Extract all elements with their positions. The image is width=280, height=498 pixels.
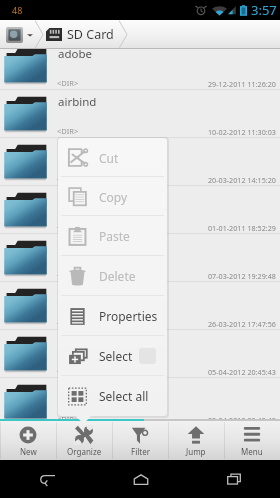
button[interactable]: bluetooth: [0, 330, 280, 378]
staticText: 05-04-2012 20:45:43: [208, 367, 276, 377]
staticText: Cut: [99, 150, 119, 166]
staticText: <DIR>: [57, 126, 79, 136]
staticText: adobe: [58, 49, 93, 62]
button[interactable]: Select all: [58, 376, 167, 416]
staticText: 29-12-2011 11:26:20: [208, 79, 276, 89]
button[interactable]: adobe: [0, 49, 280, 90]
button[interactable]: Copy: [58, 177, 167, 216]
staticText: Paste: [99, 228, 130, 244]
button[interactable]: Back: [0, 460, 94, 498]
staticText: 05-04-2012 20:45:43: [208, 415, 276, 419]
button[interactable]: books: [0, 378, 280, 419]
staticText: <DIR>: [57, 78, 79, 88]
button[interactable]: Cut: [58, 138, 167, 177]
staticText: <DIR>: [57, 270, 79, 280]
staticText: <DIR>: [57, 174, 79, 184]
button[interactable]: Paste: [58, 216, 167, 256]
button[interactable]: Recent apps: [187, 460, 280, 498]
staticText: New: [20, 446, 37, 457]
staticText: albumthumbs: [58, 142, 135, 158]
staticText: amazonmp3: [58, 190, 126, 206]
staticText: bluetooth: [58, 334, 111, 350]
staticText: backups: [58, 286, 103, 302]
staticText: Select: [99, 348, 133, 364]
button[interactable]: Filter: [112, 421, 168, 460]
button[interactable]: Delete: [58, 256, 167, 296]
staticText: Jump: [186, 446, 206, 457]
button[interactable]: backups: [0, 282, 280, 330]
staticText: 48: [12, 4, 23, 16]
staticText: SD Card: [67, 26, 114, 43]
button[interactable]: Properties: [58, 296, 167, 336]
staticText: Android: [58, 238, 102, 254]
staticText: 07-03-2012 19:29:48: [208, 271, 276, 281]
button[interactable]: Open navigation: [0, 20, 34, 49]
staticText: Copy: [99, 189, 128, 205]
staticText: Menu: [241, 446, 263, 457]
staticText: Delete: [99, 268, 136, 284]
button[interactable]: Jump: [168, 421, 224, 460]
button[interactable]: Organize: [56, 421, 112, 460]
button[interactable]: Menu: [224, 421, 280, 460]
staticText: books: [58, 382, 91, 398]
staticText: 3:57: [251, 1, 277, 19]
staticText: <DIR>: [57, 414, 79, 419]
staticText: <DIR>: [57, 366, 79, 376]
staticText: 20-03-2012 14:15:20: [208, 175, 276, 185]
staticText: <DIR>: [57, 222, 79, 232]
button[interactable]: airbind: [0, 90, 280, 138]
staticText: 26-03-2012 17:47:56: [208, 319, 276, 329]
button[interactable]: Home: [94, 460, 187, 498]
button[interactable]: New: [0, 421, 56, 460]
staticText: 10-02-2012 11:30:03: [208, 127, 276, 137]
staticText: 01-01-2011 18:52:29: [208, 223, 276, 233]
staticText: <DIR>: [57, 318, 79, 328]
button[interactable]: Select: [58, 336, 167, 376]
button[interactable]: albumthumbs: [0, 138, 280, 186]
staticText: Select all: [99, 388, 149, 404]
button[interactable]: amazonmp3: [0, 186, 280, 234]
button[interactable]: SD Card: [45, 20, 118, 49]
staticText: Filter: [131, 446, 150, 457]
staticText: Organize: [67, 446, 102, 457]
staticText: airbind: [58, 94, 97, 110]
button[interactable]: Android: [0, 234, 280, 282]
staticText: Properties: [99, 308, 158, 324]
